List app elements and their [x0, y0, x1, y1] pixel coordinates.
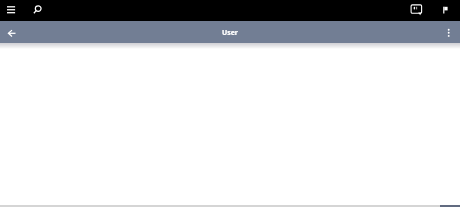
button[interactable]: Back — [2, 21, 24, 43]
button[interactable]: Menu — [1, 0, 22, 21]
button[interactable]: Messages — [406, 0, 427, 21]
button[interactable]: Search — [27, 0, 48, 21]
button[interactable]: More options — [438, 21, 460, 43]
staticText: User — [222, 28, 238, 37]
button[interactable]: Flag — [438, 0, 459, 21]
